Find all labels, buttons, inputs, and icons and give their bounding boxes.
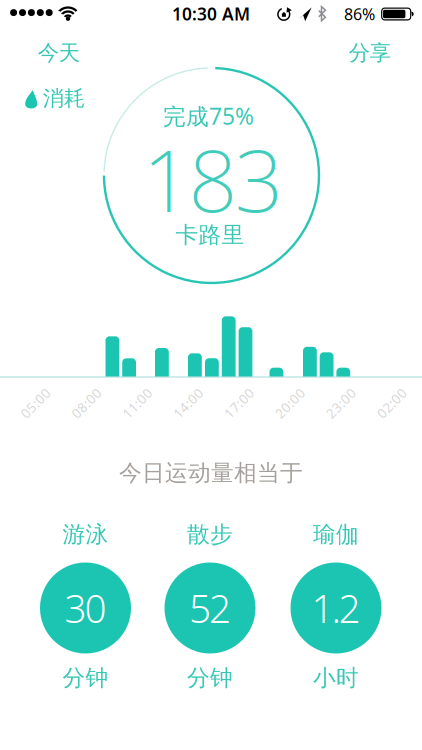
- staticText: 分享: [349, 40, 391, 66]
- staticText: 02:00: [374, 394, 410, 412]
- staticText: 52: [189, 582, 231, 634]
- staticText: 小时: [313, 664, 359, 692]
- staticText: 14:00: [170, 394, 206, 412]
- staticText: 08:00: [68, 394, 104, 412]
- staticText: 游泳: [62, 521, 108, 548]
- staticText: 1.2: [311, 582, 360, 634]
- button[interactable]: 分享: [349, 40, 391, 66]
- staticText: 今日运动量相当于: [119, 459, 303, 487]
- staticText: 消耗: [43, 85, 85, 112]
- staticText: 05:00: [17, 394, 53, 412]
- button[interactable]: 今天: [38, 40, 80, 66]
- staticText: 今天: [38, 40, 80, 66]
- staticText: 分钟: [62, 664, 108, 692]
- staticText: 卡路里: [175, 221, 244, 249]
- staticText: 86%: [344, 3, 375, 25]
- staticText: 散步: [187, 521, 233, 548]
- staticText: 183: [142, 122, 283, 236]
- staticText: 10:30 AM: [172, 2, 250, 25]
- staticText: 20:00: [272, 394, 308, 412]
- staticText: 完成75%: [163, 101, 254, 131]
- staticText: 分钟: [187, 664, 233, 692]
- staticText: 11:00: [119, 394, 155, 412]
- staticText: 23:00: [323, 394, 359, 412]
- staticText: 瑜伽: [313, 521, 359, 548]
- staticText: 30: [64, 582, 106, 634]
- staticText: 17:00: [221, 394, 257, 412]
